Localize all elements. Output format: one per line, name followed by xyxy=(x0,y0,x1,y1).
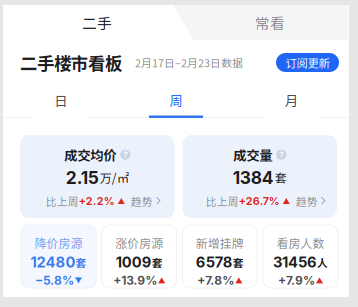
staticText: 降价房源 xyxy=(34,234,82,251)
staticText: 12480 xyxy=(30,253,75,271)
staticText: −5.8% xyxy=(35,273,74,288)
button[interactable]: 日 xyxy=(3,85,118,118)
staticText: 新增挂牌 xyxy=(196,234,244,251)
staticText: 1009 xyxy=(116,253,152,271)
staticText: 周 xyxy=(169,91,182,110)
staticText: 日 xyxy=(54,91,67,110)
button[interactable]: 成交量 xyxy=(182,135,337,218)
button[interactable]: 常看 xyxy=(191,5,349,40)
staticText: 成交量 xyxy=(233,145,272,164)
staticText: 二手 xyxy=(82,12,112,33)
button[interactable]: 新增挂牌 xyxy=(182,225,257,288)
staticText: 套 xyxy=(275,169,287,186)
staticText: 2.15 xyxy=(66,167,99,188)
button[interactable]: 涨价房源 xyxy=(102,225,177,288)
staticText: ? xyxy=(123,150,127,159)
staticText: 常看 xyxy=(255,12,285,33)
staticText: 趋势 xyxy=(131,193,153,209)
staticText: 人 xyxy=(317,255,328,270)
staticText: 趋势 xyxy=(296,193,318,209)
staticText: 看房人数 xyxy=(276,234,324,251)
staticText: 万/㎡ xyxy=(100,169,129,186)
staticText: 6578 xyxy=(196,253,233,271)
button[interactable]: 二手 xyxy=(3,5,191,40)
staticText: 比上周 xyxy=(46,193,79,209)
staticText: 月 xyxy=(285,91,298,110)
staticText: +2.2% xyxy=(79,194,115,207)
staticText: +26.7% xyxy=(239,194,280,207)
button[interactable]: 月 xyxy=(234,85,349,118)
staticText: 2月17日–2月23日数据 xyxy=(135,55,243,70)
staticText: ? xyxy=(279,150,283,159)
button[interactable]: 订阅更新 xyxy=(276,53,339,72)
staticText: 二手楼市看板 xyxy=(20,50,122,75)
staticText: +7.8% xyxy=(197,273,234,288)
staticText: 涨价房源 xyxy=(115,234,163,251)
staticText: 套 xyxy=(152,255,163,270)
staticText: 套 xyxy=(75,255,86,270)
staticText: 31456 xyxy=(273,253,317,271)
button[interactable]: 周 xyxy=(118,85,234,118)
button[interactable]: 降价房源 xyxy=(21,225,96,288)
staticText: 比上周 xyxy=(206,193,239,209)
button[interactable]: 看房人数 xyxy=(263,225,338,288)
staticText: +7.9% xyxy=(278,273,315,288)
staticText: 订阅更新 xyxy=(285,54,329,71)
staticText: 套 xyxy=(233,255,244,270)
staticText: 成交均价 xyxy=(64,145,116,164)
staticText: +13.9% xyxy=(113,273,157,288)
button[interactable]: 成交均价 xyxy=(20,135,174,218)
staticText: 1384 xyxy=(233,167,274,188)
